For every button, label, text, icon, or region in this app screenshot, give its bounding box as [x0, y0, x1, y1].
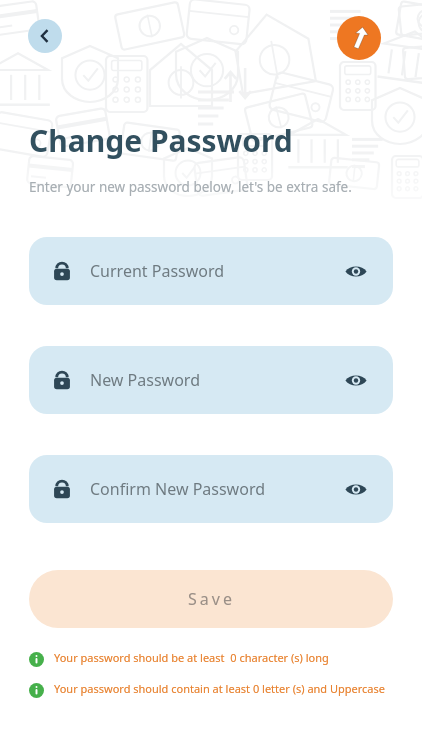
staticText: New Password [90, 369, 200, 391]
staticText: Confirm New Password [90, 478, 266, 500]
button[interactable]: Confirm New Password [29, 455, 393, 523]
staticText: Enter your new password below, let's be … [29, 178, 352, 196]
staticText: Save [188, 588, 235, 610]
button[interactable]: Show password [341, 256, 371, 286]
staticText: Your password should be at least 0 chara… [54, 650, 329, 665]
staticText: Change Password [29, 120, 293, 161]
button[interactable]: Current Password [29, 237, 393, 305]
staticText: Your password should contain at least 0 … [54, 681, 386, 696]
button[interactable]: Navigate [337, 16, 381, 60]
staticText: Current Password [90, 260, 225, 282]
button[interactable]: Show password [341, 365, 371, 395]
button[interactable]: Show password [341, 474, 371, 504]
button[interactable]: Save [29, 570, 393, 628]
button[interactable]: Back [28, 19, 62, 53]
button[interactable]: New Password [29, 346, 393, 414]
